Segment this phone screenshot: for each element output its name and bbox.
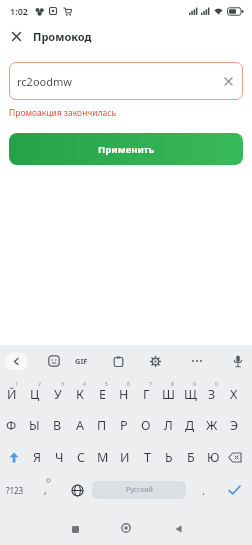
staticText: Л <box>164 417 173 434</box>
staticText: 4 <box>83 381 86 388</box>
button[interactable] <box>220 474 248 506</box>
button[interactable] <box>224 440 246 474</box>
staticText: 5 <box>105 381 108 388</box>
button[interactable] <box>120 522 132 534</box>
button[interactable] <box>3 22 29 51</box>
staticText: А <box>76 417 84 434</box>
staticText: Применить <box>98 143 155 156</box>
button[interactable]: Ц <box>23 377 46 411</box>
button[interactable]: В <box>46 411 69 440</box>
button[interactable] <box>150 356 161 367</box>
staticText: Э <box>230 417 239 434</box>
button[interactable] <box>175 525 182 533</box>
staticText: Н <box>119 386 129 403</box>
staticText: . <box>202 483 205 498</box>
staticText: Ь <box>165 449 173 466</box>
staticText: , <box>44 483 47 497</box>
staticText: О <box>141 417 151 434</box>
staticText: Б <box>187 449 195 466</box>
button[interactable]: О <box>135 411 157 440</box>
staticText: ?123 <box>6 485 24 496</box>
button[interactable]: Ю <box>202 440 224 474</box>
button[interactable] <box>2 440 25 474</box>
staticText: Г <box>143 386 150 403</box>
button[interactable]: Применить <box>9 133 243 165</box>
staticText: З <box>208 386 216 403</box>
staticText: 1:02 <box>10 5 28 17</box>
staticText: 2 <box>38 381 41 388</box>
staticText: Промоакция закончилась <box>9 107 117 119</box>
staticText: Ы <box>29 417 40 434</box>
button[interactable]: . <box>186 474 220 506</box>
staticText: Е <box>99 386 106 403</box>
button[interactable]: GIF <box>75 356 88 366</box>
button[interactable]: Ч <box>48 440 70 474</box>
staticText: Й <box>7 386 17 403</box>
staticText: GIF <box>75 356 88 366</box>
button[interactable] <box>191 355 203 367</box>
staticText: И <box>120 449 130 466</box>
staticText: М <box>97 449 109 466</box>
staticText: Ш <box>162 386 175 403</box>
button[interactable]: Г <box>135 377 157 411</box>
button[interactable]: П <box>91 411 113 440</box>
staticText: К <box>76 386 84 403</box>
staticText: С <box>77 449 86 466</box>
staticText: 0 <box>215 381 218 388</box>
button[interactable]: rc2oodmw <box>9 62 243 100</box>
staticText: 8 <box>171 381 174 388</box>
button[interactable]: И <box>114 440 136 474</box>
button[interactable]: Т <box>136 440 158 474</box>
button[interactable]: М <box>92 440 114 474</box>
button[interactable]: Д <box>179 411 201 440</box>
button[interactable]: Б <box>180 440 202 474</box>
staticText: У <box>54 386 62 403</box>
button[interactable]: К <box>69 377 91 411</box>
staticText: 9 <box>193 381 196 388</box>
button[interactable]: А <box>69 411 91 440</box>
staticText: Р <box>120 417 128 434</box>
button[interactable]: Й <box>0 377 23 411</box>
button[interactable]: Я <box>25 440 48 474</box>
staticText: Ч <box>55 449 64 466</box>
staticText: 6 <box>127 381 130 388</box>
staticText: Промокод <box>33 29 92 44</box>
button[interactable]: Ш <box>157 377 179 411</box>
staticText: Ж <box>206 417 218 434</box>
button[interactable] <box>48 355 60 367</box>
button[interactable] <box>113 356 124 367</box>
staticText: Ц <box>30 386 40 403</box>
button[interactable]: Е <box>91 377 113 411</box>
button[interactable] <box>62 474 92 506</box>
staticText: Х <box>230 386 238 403</box>
staticText: Щ <box>184 386 197 403</box>
staticText: Русский <box>126 485 153 495</box>
button[interactable] <box>5 353 28 370</box>
button[interactable]: Ф <box>0 411 23 440</box>
button[interactable]: Н <box>113 377 135 411</box>
button[interactable]: ?123 <box>0 474 30 506</box>
staticText: Ю <box>207 449 220 466</box>
staticText: 1 <box>15 381 18 388</box>
button[interactable] <box>233 355 243 368</box>
button[interactable]: Э <box>223 411 245 440</box>
staticText: 3 <box>61 381 64 388</box>
button[interactable]: , <box>30 474 62 506</box>
button[interactable]: Щ <box>179 377 201 411</box>
staticText: П <box>97 417 107 434</box>
button[interactable]: Ь <box>158 440 180 474</box>
button[interactable]: У <box>46 377 69 411</box>
staticText: В <box>53 417 62 434</box>
button[interactable]: Р <box>113 411 135 440</box>
staticText: Я <box>33 449 41 466</box>
button[interactable]: З <box>201 377 223 411</box>
button[interactable]: Л <box>157 411 179 440</box>
button[interactable]: С <box>70 440 92 474</box>
button[interactable]: Русский <box>92 481 186 499</box>
button[interactable]: Ы <box>23 411 46 440</box>
button[interactable]: Ж <box>201 411 223 440</box>
button[interactable]: Х <box>223 377 245 411</box>
button[interactable] <box>69 523 81 535</box>
staticText: Ф <box>6 417 17 434</box>
staticText: 7 <box>149 381 152 388</box>
